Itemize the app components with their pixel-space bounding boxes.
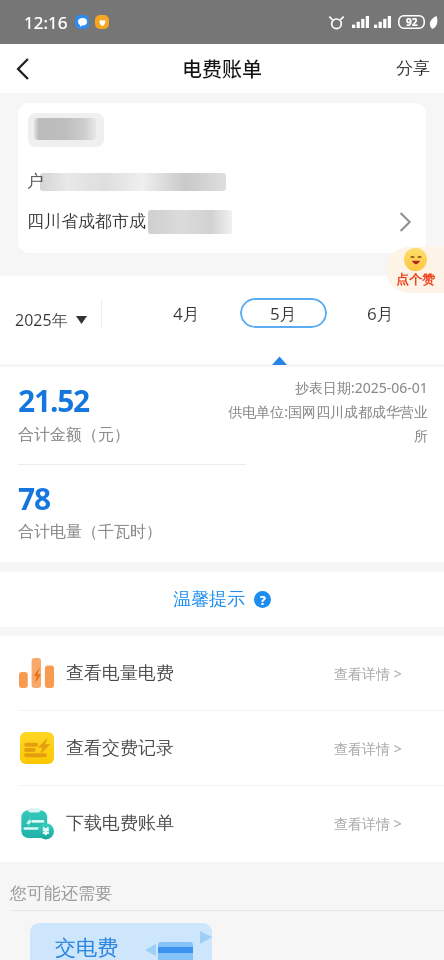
button[interactable]: 温馨提示 [165,582,279,617]
button[interactable]: 户 [18,103,426,253]
staticText: 查看详情 > [334,814,402,833]
staticText: 下载电费账单 [66,812,174,835]
staticText: 查看详情 > [334,664,402,683]
staticText: 92 [406,15,418,29]
button[interactable]: 交电费 [30,923,212,960]
staticText: 温馨提示 [173,588,245,611]
button[interactable]: 5月 [240,298,327,328]
staticText: 分享 [396,58,430,79]
staticText: 电费账单 [182,54,262,83]
button[interactable]: 分享 [396,44,430,93]
staticText: ? [260,592,266,608]
staticText: 21.52 [18,380,90,421]
staticText: 户 [27,171,44,192]
staticText: 6月 [367,302,394,325]
staticText: 供电单位:国网四川成都成华营业所 [221,402,428,445]
button[interactable]: 2025年 [8,276,94,364]
staticText: 12:16 [24,11,68,34]
button[interactable]: 下载电费账单 [0,786,444,860]
staticText: 5月 [270,302,297,325]
button[interactable]: 4月 [156,297,216,329]
staticText: 合计金额（元） [18,425,130,445]
staticText: 交电费 [55,935,118,960]
staticText: 您可能还需要 [10,883,112,904]
staticText: 查看交费记录 [66,737,174,760]
button[interactable]: 查看交费记录 [0,711,444,785]
staticText: 查看详情 > [334,739,402,758]
staticText: 四川省成都市成 [27,211,146,232]
staticText: 查看电量电费 [66,662,174,685]
button[interactable]: 6月 [350,297,410,329]
button[interactable]: Like [386,247,444,293]
staticText: 4月 [173,302,200,325]
button[interactable]: 查看电量电费 [0,636,444,710]
button[interactable]: Back [0,44,44,93]
staticText: 2025年 [15,309,68,331]
staticText: 抄表日期:2025-06-01 [295,378,428,397]
staticText: 合计电量（千瓦时） [18,522,162,542]
staticText: 78 [18,478,50,519]
staticText: 点个赞 [396,271,435,287]
